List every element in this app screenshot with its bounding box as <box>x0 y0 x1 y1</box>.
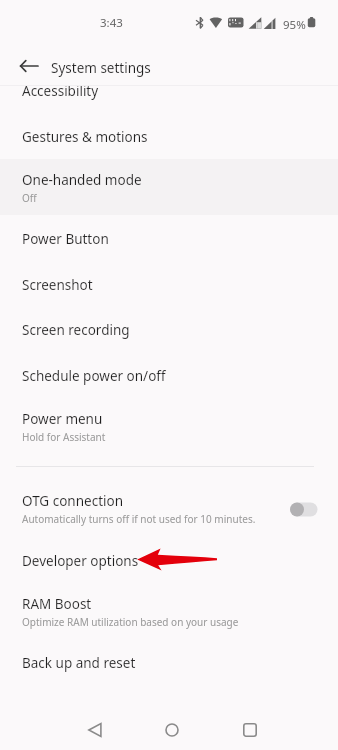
staticText: Accessibility <box>22 86 99 100</box>
button[interactable]: Screenshot <box>0 262 338 308</box>
button[interactable]: Gestures & motions <box>0 114 338 160</box>
staticText: System settings <box>51 59 151 77</box>
button[interactable]: Power Button <box>0 216 338 262</box>
staticText: Power Button <box>22 230 109 248</box>
button[interactable]: Home <box>151 709 192 750</box>
staticText: OTG connection <box>22 492 124 510</box>
button[interactable]: Power menu <box>0 399 338 455</box>
staticText: 3:43 <box>100 15 123 31</box>
staticText: Gestures & motions <box>22 128 148 146</box>
staticText: Power menu <box>22 410 103 428</box>
button[interactable]: Accessibility <box>0 86 338 114</box>
staticText: Schedule power on/off <box>22 367 166 385</box>
button[interactable]: OTG connection <box>0 481 338 537</box>
staticText: Screenshot <box>22 276 93 294</box>
staticText: Developer options <box>22 552 139 570</box>
staticText: RAM Boost <box>22 595 92 613</box>
staticText: Automatically turns off if not used for … <box>22 512 256 526</box>
button[interactable]: Back <box>15 52 43 80</box>
staticText: Screen recording <box>22 321 130 339</box>
staticText: 95% <box>283 17 306 33</box>
button[interactable]: RAM Boost <box>0 584 338 640</box>
staticText: Hold for Assistant <box>22 430 106 444</box>
staticText: Off <box>22 191 37 205</box>
button[interactable]: Schedule power on/off <box>0 353 338 399</box>
button[interactable]: One-handed mode <box>0 160 338 216</box>
staticText: Back up and reset <box>22 654 136 672</box>
staticText: Optimize RAM utilization based on your u… <box>22 615 239 629</box>
button[interactable]: Back <box>74 709 115 750</box>
button[interactable]: Screen recording <box>0 307 338 353</box>
button[interactable]: Recent apps <box>229 709 270 750</box>
staticText: One-handed mode <box>22 171 142 189</box>
button[interactable]: Back up and reset <box>0 640 338 686</box>
button[interactable]: Developer options <box>0 538 338 584</box>
